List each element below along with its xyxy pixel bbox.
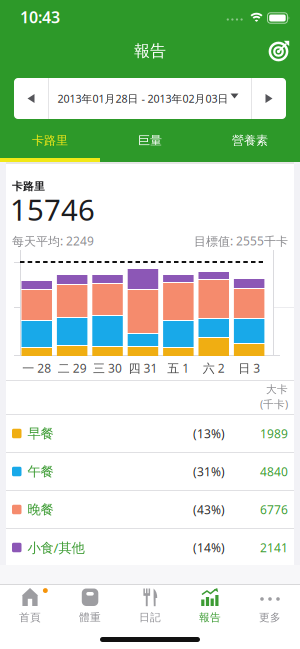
button[interactable]: [14, 78, 286, 119]
button[interactable]: 營養素: [200, 119, 300, 162]
staticText: 每天平均: 2249: [12, 233, 94, 249]
staticText: 晚餐: [27, 501, 53, 518]
staticText: 4840: [260, 463, 288, 479]
staticText: 卡路里: [12, 180, 45, 193]
staticText: (14%): [193, 539, 225, 555]
button[interactable]: 首頁: [0, 586, 300, 649]
staticText: 更多: [259, 611, 281, 624]
staticText: 早餐: [27, 425, 53, 442]
staticText: 報告: [199, 611, 221, 624]
button[interactable]: 巨量: [100, 119, 200, 162]
staticText: 二 29: [58, 360, 87, 376]
button[interactable]: 小食/其他: [0, 528, 300, 566]
button[interactable]: 卡路里: [0, 119, 100, 162]
staticText: 10:43: [20, 6, 60, 28]
staticText: 小食/其他: [27, 539, 84, 556]
staticText: 1989: [260, 425, 288, 441]
staticText: 營養素: [232, 133, 268, 148]
staticText: 日記: [139, 611, 161, 624]
staticText: 2141: [260, 539, 288, 555]
staticText: (13%): [193, 425, 225, 441]
staticText: 首頁: [19, 611, 41, 624]
staticText: 六 2: [203, 360, 225, 376]
staticText: 報告: [134, 41, 166, 61]
staticText: (31%): [193, 463, 225, 479]
staticText: 6776: [260, 501, 288, 517]
staticText: 四 31: [128, 360, 157, 376]
button[interactable]: 更多: [240, 586, 300, 649]
staticText: (千卡): [260, 397, 288, 411]
staticText: 15746: [10, 190, 95, 229]
staticText: 2013年01月28日 - 2013年02月03日: [57, 91, 228, 106]
staticText: 一 28: [22, 360, 51, 376]
staticText: 卡路里: [32, 133, 68, 148]
button[interactable]: 2013年01月28日 - 2013年02月03日: [48, 78, 251, 119]
staticText: 日 3: [238, 360, 260, 376]
button[interactable]: [14, 78, 48, 119]
staticText: 午餐: [27, 463, 53, 480]
button[interactable]: 體重: [60, 586, 300, 649]
button[interactable]: [262, 32, 296, 66]
button[interactable]: 午餐: [0, 452, 300, 490]
button[interactable]: [252, 78, 286, 119]
staticText: 體重: [79, 611, 101, 624]
button[interactable]: 晚餐: [0, 490, 300, 528]
staticText: 大卡: [266, 383, 288, 396]
staticText: 巨量: [138, 133, 162, 148]
button[interactable]: 早餐: [0, 414, 300, 452]
button[interactable]: 日記: [120, 586, 300, 649]
staticText: 目標值: 2555千卡: [194, 233, 288, 249]
staticText: 三 30: [93, 360, 122, 376]
staticText: 五 1: [167, 360, 189, 376]
button[interactable]: 報告: [180, 586, 300, 649]
staticText: (43%): [193, 501, 225, 517]
